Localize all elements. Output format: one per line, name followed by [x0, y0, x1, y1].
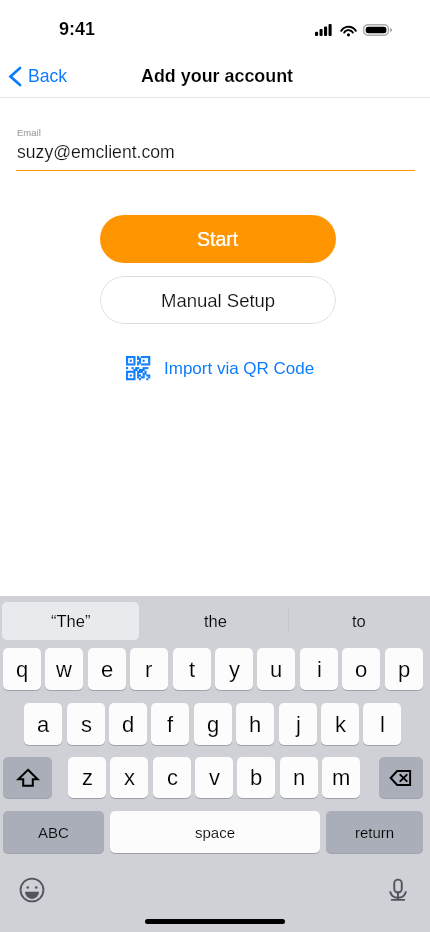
staticText: b — [250, 765, 263, 790]
button[interactable]: r — [130, 648, 168, 690]
staticText: ABC — [38, 824, 69, 841]
button[interactable]: q — [3, 648, 41, 690]
button[interactable]: f — [151, 703, 189, 745]
staticText: d — [122, 712, 135, 737]
staticText: the — [204, 612, 227, 630]
button[interactable]: c — [153, 757, 191, 798]
button[interactable]: v — [195, 757, 233, 798]
button[interactable]: Emoji keyboard — [15, 873, 49, 907]
button[interactable]: l — [363, 703, 401, 745]
button[interactable]: t — [173, 648, 211, 690]
staticText: l — [380, 712, 385, 737]
button[interactable]: Back — [0, 61, 80, 91]
staticText: u — [270, 657, 283, 682]
button[interactable]: return — [326, 811, 423, 853]
button[interactable]: y — [215, 648, 253, 690]
staticText: q — [16, 657, 29, 682]
button[interactable]: p — [385, 648, 423, 690]
staticText: p — [398, 657, 411, 682]
staticText: t — [189, 657, 196, 682]
staticText: “The” — [51, 612, 91, 630]
button[interactable]: a — [24, 703, 62, 745]
staticText: e — [101, 657, 114, 682]
staticText: Email — [17, 127, 41, 138]
button[interactable]: to — [287, 602, 430, 640]
button[interactable]: e — [88, 648, 126, 690]
button[interactable]: n — [280, 757, 318, 798]
staticText: k — [335, 712, 346, 737]
staticText: Manual Setup — [161, 290, 276, 311]
button[interactable]: space — [110, 811, 320, 853]
button[interactable]: d — [109, 703, 147, 745]
staticText: return — [355, 824, 395, 841]
button[interactable]: z — [68, 757, 106, 798]
button[interactable]: Backspace — [379, 757, 423, 798]
staticText: Start — [197, 228, 239, 250]
staticText: o — [355, 657, 368, 682]
staticText: 9:41 — [59, 19, 96, 39]
button[interactable]: i — [300, 648, 338, 690]
button[interactable]: Import via QR Code — [118, 348, 323, 388]
staticText: g — [207, 712, 220, 737]
button[interactable]: ABC — [3, 811, 104, 853]
staticText: j — [296, 712, 301, 737]
button[interactable]: u — [257, 648, 295, 690]
staticText: w — [56, 657, 72, 682]
staticText: to — [352, 612, 366, 630]
staticText: c — [167, 765, 178, 790]
staticText: m — [332, 765, 351, 790]
staticText: v — [209, 765, 220, 790]
button[interactable]: k — [321, 703, 359, 745]
staticText: Add your account — [141, 66, 294, 86]
button[interactable]: w — [45, 648, 83, 690]
button[interactable]: “The” — [2, 602, 139, 640]
button[interactable]: Shift — [3, 757, 52, 798]
button[interactable]: Manual Setup — [100, 276, 336, 324]
staticText: n — [293, 765, 306, 790]
staticText: i — [317, 657, 322, 682]
staticText: h — [249, 712, 262, 737]
staticText: x — [124, 765, 135, 790]
button[interactable]: g — [194, 703, 232, 745]
button[interactable]: the — [144, 602, 287, 640]
button[interactable]: b — [237, 757, 275, 798]
staticText: suzy@emclient.com — [17, 142, 175, 162]
button[interactable]: x — [110, 757, 148, 798]
button[interactable]: j — [279, 703, 317, 745]
staticText: space — [195, 824, 236, 841]
staticText: y — [229, 657, 240, 682]
staticText: f — [167, 712, 174, 737]
button[interactable]: o — [342, 648, 380, 690]
button[interactable]: s — [67, 703, 105, 745]
button[interactable]: Dictation — [381, 873, 415, 907]
staticText: r — [145, 657, 153, 682]
button[interactable]: Start — [100, 215, 336, 263]
button[interactable]: h — [236, 703, 274, 745]
staticText: a — [37, 712, 50, 737]
button[interactable]: m — [322, 757, 360, 798]
staticText: z — [82, 765, 93, 790]
staticText: Back — [28, 66, 68, 86]
staticText: Import via QR Code — [164, 359, 315, 378]
staticText: s — [81, 712, 92, 737]
